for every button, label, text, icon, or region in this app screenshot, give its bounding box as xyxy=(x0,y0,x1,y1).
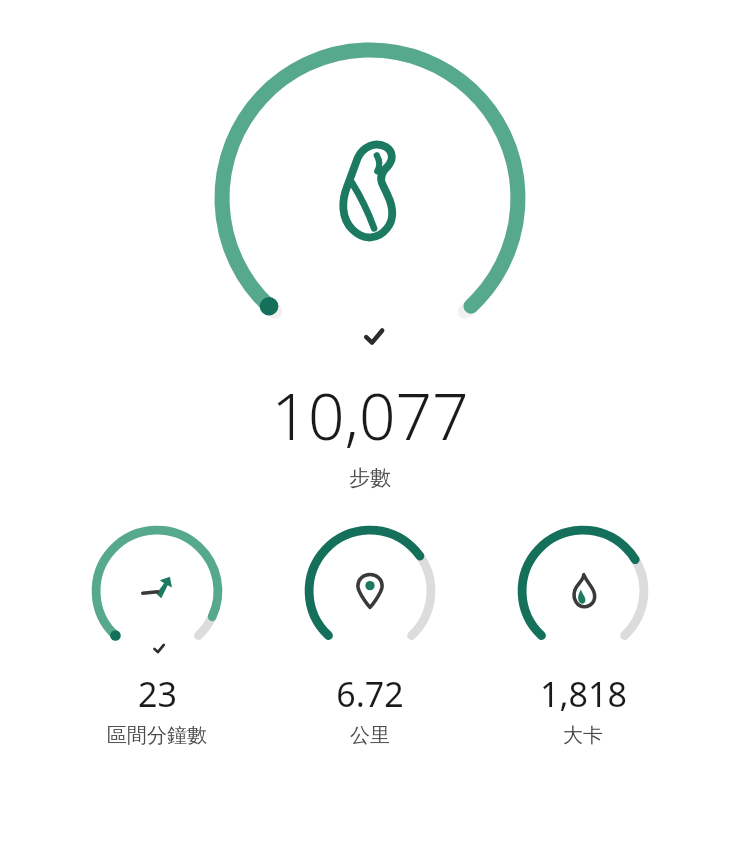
button[interactable]: 10,077 xyxy=(0,372,740,491)
staticText: 6.72 xyxy=(336,671,404,717)
staticText: 步數 xyxy=(349,465,391,491)
staticText: 大卡 xyxy=(563,723,603,748)
button[interactable]: 23 xyxy=(87,521,227,748)
button[interactable]: Steps ring xyxy=(200,34,540,364)
staticText: 1,818 xyxy=(540,671,627,717)
button[interactable]: 6.72 xyxy=(300,521,440,748)
button[interactable]: 1,818 xyxy=(513,521,653,748)
staticText: 公里 xyxy=(350,723,390,748)
staticText: 23 xyxy=(138,671,177,717)
staticText: 區間分鐘數 xyxy=(107,723,207,748)
staticText: 10,077 xyxy=(271,372,469,459)
